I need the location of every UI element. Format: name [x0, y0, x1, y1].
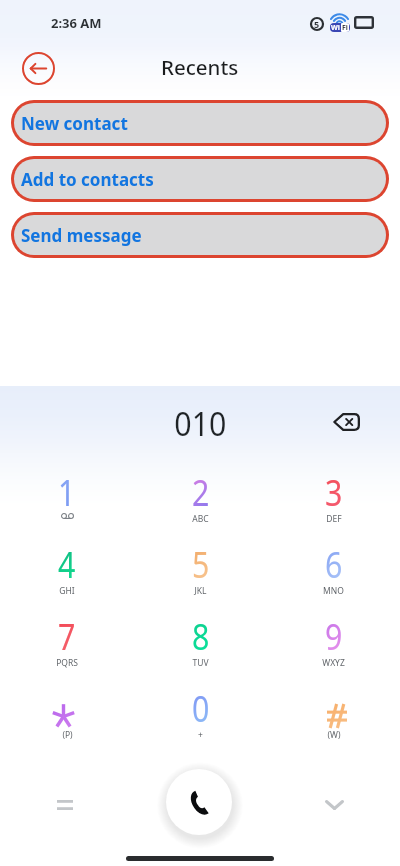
button[interactable]: Back — [19, 49, 57, 87]
staticText: 5 — [314, 18, 320, 30]
staticText: 2 — [192, 466, 210, 516]
button[interactable]: 1 — [0, 460, 134, 532]
button[interactable]: (P) — [0, 676, 134, 748]
staticText: Wi — [331, 23, 340, 32]
staticText: JKL — [194, 585, 207, 597]
staticText: PQRS — [56, 657, 78, 669]
button[interactable]: 5 — [134, 532, 267, 604]
staticText: 1 — [58, 466, 76, 516]
staticText: New contact — [21, 112, 128, 135]
staticText: 9 — [325, 610, 343, 660]
staticText: + — [198, 729, 203, 741]
staticText: 8 — [192, 610, 210, 660]
staticText: Recents — [161, 53, 239, 81]
button[interactable]: Add to contacts — [11, 156, 389, 202]
staticText: GHI — [59, 585, 75, 597]
button[interactable]: (W) — [267, 676, 400, 748]
button[interactable]: Call — [166, 769, 232, 835]
button[interactable]: New contact — [11, 100, 389, 146]
staticText: 2:36 AM — [51, 14, 102, 32]
staticText: Send message — [21, 224, 142, 247]
button[interactable]: 7 — [0, 604, 134, 676]
staticText: 3 — [325, 466, 343, 516]
button[interactable]: 8 — [134, 604, 267, 676]
staticText: 6 — [325, 538, 343, 588]
staticText: Add to contacts — [21, 168, 154, 191]
button[interactable]: Dial options — [46, 786, 83, 823]
staticText: MNO — [323, 585, 344, 597]
button[interactable]: 4 — [0, 532, 134, 604]
staticText: 7 — [58, 610, 76, 660]
staticText: TUV — [192, 657, 209, 669]
button[interactable]: 9 — [267, 604, 400, 676]
staticText: ABC — [192, 513, 209, 525]
staticText: (P) — [62, 729, 73, 741]
staticText: 5 — [192, 538, 210, 588]
staticText: WXYZ — [322, 657, 345, 669]
button[interactable]: Hide keypad — [316, 786, 353, 823]
staticText: 4 — [58, 538, 76, 588]
button[interactable]: 3 — [267, 460, 400, 532]
button[interactable]: Send message — [11, 212, 389, 258]
staticText: Fi — [342, 23, 348, 32]
button[interactable]: Backspace — [323, 399, 368, 444]
staticText: 0 — [192, 682, 210, 732]
button[interactable]: 6 — [267, 532, 400, 604]
button[interactable]: 0 — [134, 676, 267, 748]
staticText: DEF — [326, 513, 342, 525]
staticText: (W) — [327, 729, 341, 741]
button[interactable]: 2 — [134, 460, 267, 532]
staticText: 010 — [174, 401, 227, 446]
